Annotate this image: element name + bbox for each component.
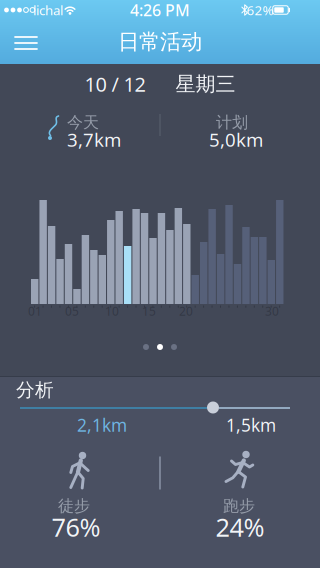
staticText: 15 xyxy=(142,303,156,319)
staticText: 1,5km xyxy=(226,413,276,436)
staticText: 24% xyxy=(215,510,264,544)
staticText: 10 / 12 xyxy=(84,71,145,97)
staticText: 分析 xyxy=(16,378,54,401)
button[interactable]: Distance slider xyxy=(207,401,219,413)
staticText: 星期三 xyxy=(175,72,235,96)
staticText: 计划 xyxy=(216,113,248,132)
staticText: 76% xyxy=(51,510,100,544)
staticText: 跑步 xyxy=(223,496,255,516)
staticText: 今天 xyxy=(67,113,99,132)
staticText: lichal xyxy=(33,1,63,19)
staticText: 30 xyxy=(265,303,279,319)
button[interactable]: Menu xyxy=(4,20,48,64)
staticText: 5,0km xyxy=(209,127,263,152)
staticText: 01 xyxy=(28,303,42,319)
staticText: 62% xyxy=(246,1,273,19)
staticText: 徒步 xyxy=(58,496,90,516)
staticText: 05 xyxy=(65,303,79,319)
staticText: 2,1km xyxy=(77,413,127,436)
staticText: 20 xyxy=(179,303,193,319)
staticText: 3,7km xyxy=(67,127,121,152)
staticText: 10 xyxy=(105,303,119,319)
staticText: 日常活动 xyxy=(118,29,202,55)
staticText: 4:26 PM xyxy=(130,0,190,21)
